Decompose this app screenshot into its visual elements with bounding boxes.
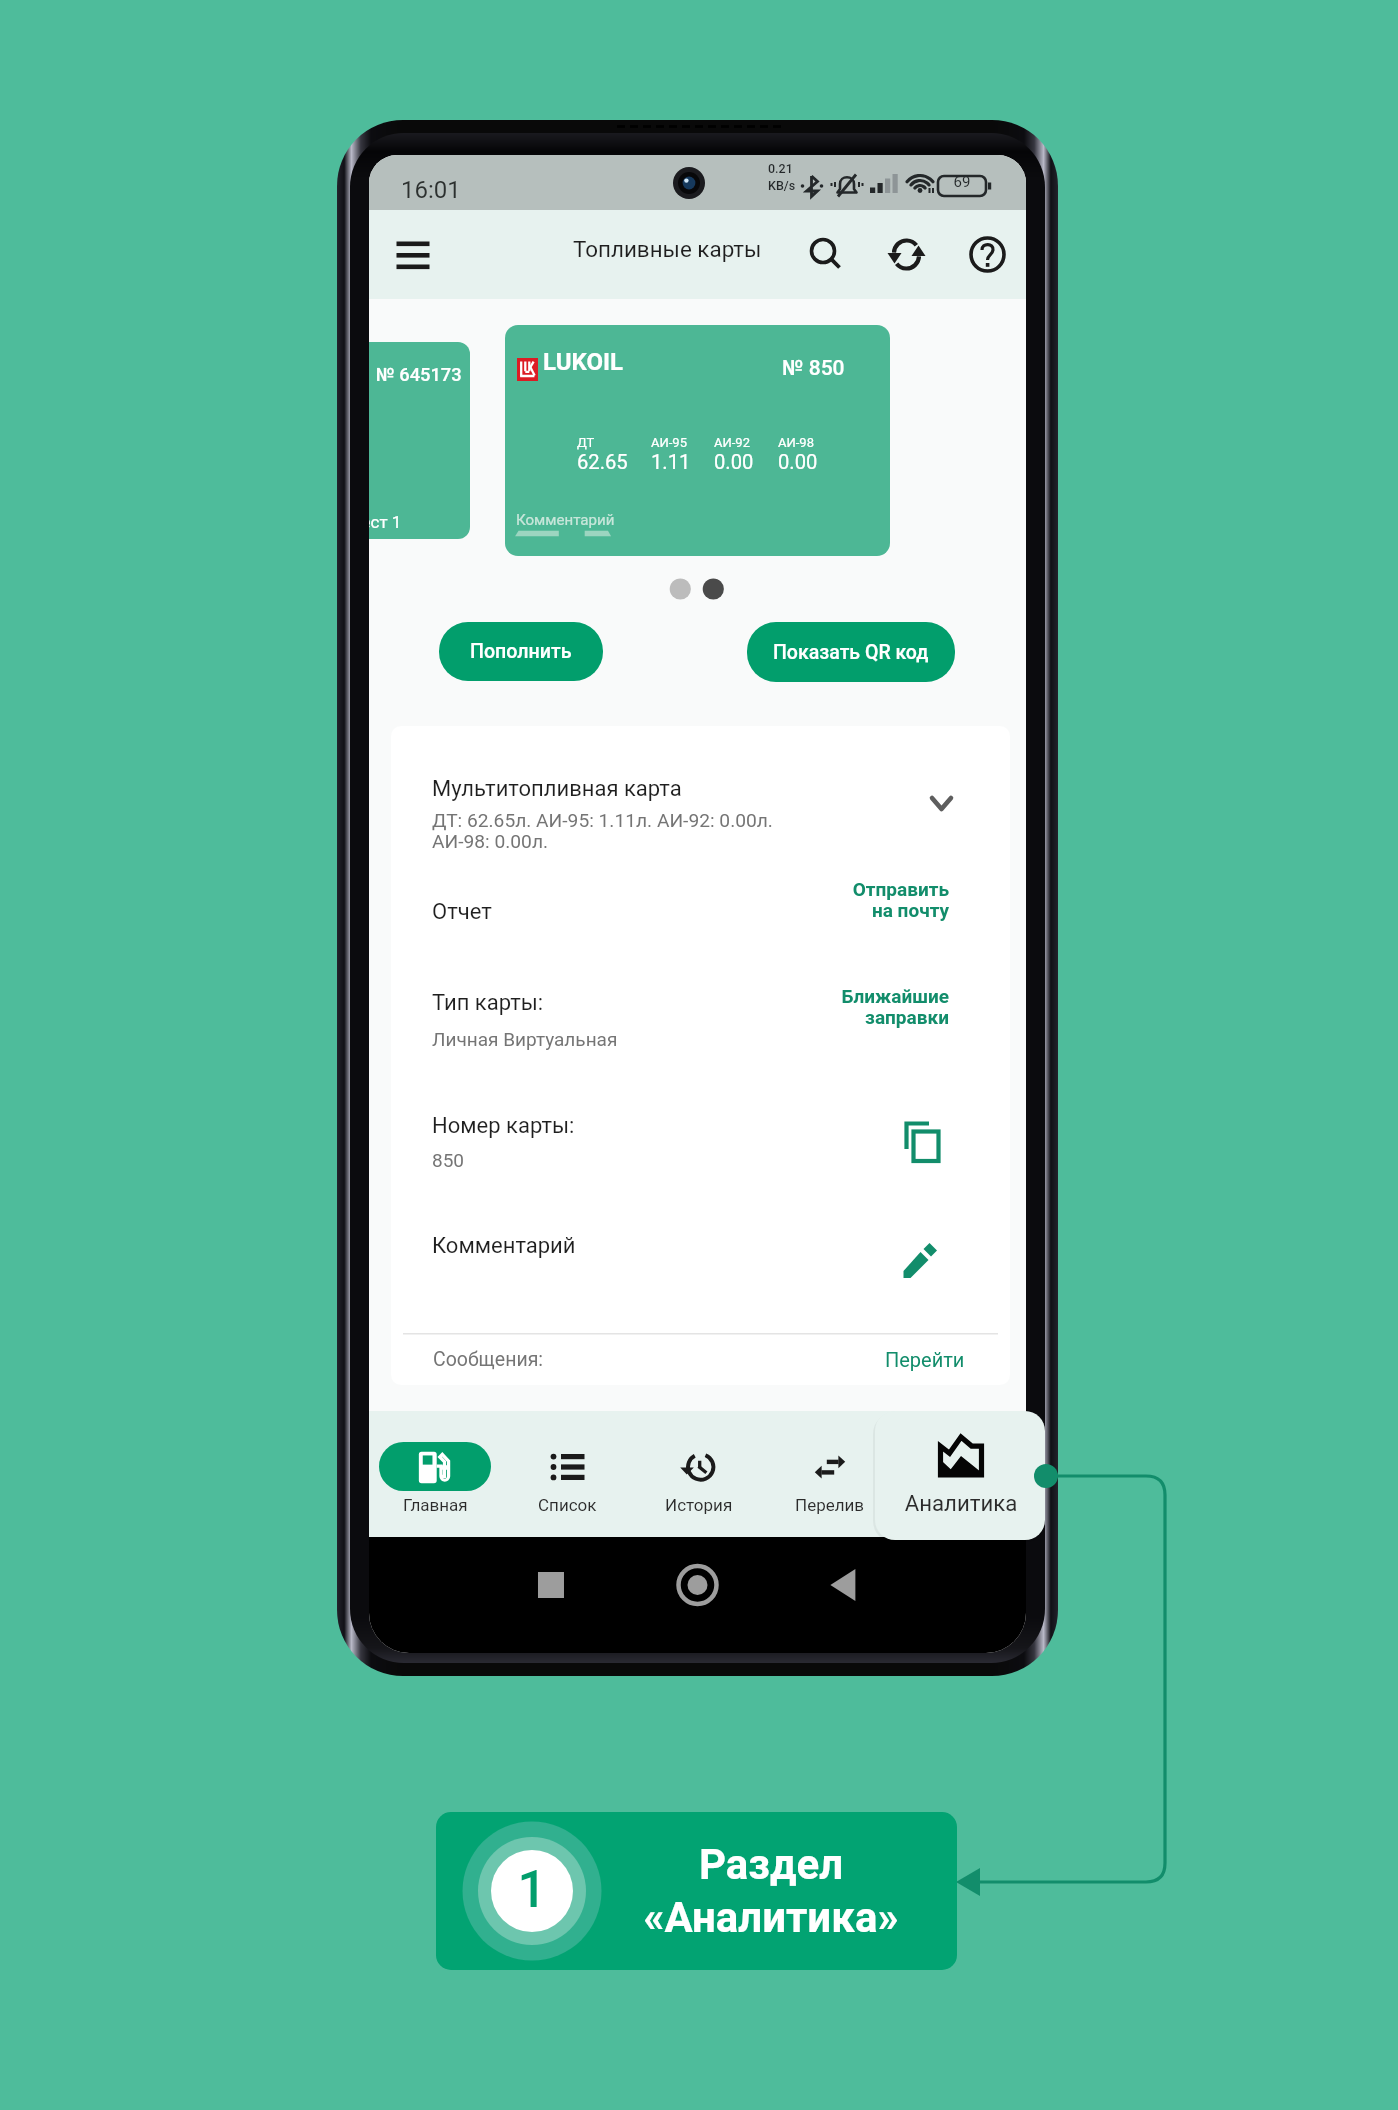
button[interactable]: Аналитика <box>875 1411 1045 1540</box>
button[interactable]: Help <box>961 228 1014 281</box>
staticText: ДТ <box>577 435 595 450</box>
staticText: № 850 <box>782 356 845 381</box>
button[interactable]: LUKOIL <box>505 325 890 556</box>
staticText: 16:01 <box>401 176 461 204</box>
staticText: Отправить на почту <box>721 878 949 922</box>
staticText: Тип карты: <box>432 990 544 1016</box>
staticText: Перелив <box>795 1495 865 1515</box>
button[interactable]: № 645173 <box>369 342 470 539</box>
button[interactable]: Сообщения: <box>403 1333 998 1385</box>
staticText: АИ-92 <box>714 435 750 450</box>
staticText: № 645173 <box>376 364 462 385</box>
button[interactable]: Перелив <box>764 1411 895 1537</box>
staticText: Аналитика <box>901 1490 1021 1516</box>
staticText: Показать QR код <box>773 641 929 664</box>
button[interactable]: Expand details <box>916 778 967 829</box>
staticText: Отчет <box>432 899 492 925</box>
staticText: 0.00 <box>778 450 818 474</box>
staticText: 0.00 <box>714 450 754 474</box>
staticText: LUKOIL <box>543 348 623 376</box>
staticText: Номер карты: <box>432 1113 575 1139</box>
staticText: Ближайшие заправки <box>721 985 949 1029</box>
staticText: 850 <box>432 1149 465 1171</box>
staticText: 0.21 <box>768 161 793 176</box>
staticText: История <box>665 1495 733 1515</box>
staticText: тест 1 <box>369 512 402 532</box>
staticText: 1.11 <box>651 450 691 474</box>
staticText: KB/s <box>768 178 796 193</box>
staticText: АИ-95 <box>651 435 687 450</box>
staticText: Список <box>538 1495 597 1515</box>
button[interactable]: История <box>633 1411 764 1537</box>
staticText: 69 <box>946 173 978 191</box>
staticText: Перейти <box>885 1348 965 1371</box>
button[interactable]: Copy card number <box>898 1118 950 1170</box>
staticText: Раздел «Аналитика» <box>621 1840 921 1942</box>
staticText: Аналитика <box>917 1495 1004 1515</box>
button[interactable]: Refresh <box>880 228 933 281</box>
staticText: Комментарий <box>432 1233 576 1259</box>
button[interactable]: Menu <box>388 230 438 280</box>
staticText: Сообщения: <box>433 1348 885 1371</box>
button[interactable]: Аналитика <box>895 1411 1026 1537</box>
staticText: Комментарий <box>516 511 615 529</box>
staticText: Личная Виртуальная <box>432 1028 618 1050</box>
staticText: Главная <box>403 1495 468 1515</box>
staticText: АИ-98 <box>778 435 814 450</box>
staticText: Топливные карты <box>573 236 762 262</box>
button[interactable]: Главная <box>369 1411 501 1537</box>
button[interactable]: Edit comment <box>893 1236 945 1288</box>
button[interactable]: Показать QR код <box>747 622 955 682</box>
staticText: Мультитопливная карта <box>432 776 682 802</box>
staticText: 1 <box>462 1860 602 1920</box>
button[interactable]: Отправить на почту <box>721 878 949 922</box>
staticText: 62.65 <box>577 450 628 474</box>
button[interactable]: Search <box>799 228 852 281</box>
staticText: ДТ: 62.65л. АИ-95: 1.11л. АИ-92: 0.00л. … <box>432 809 773 853</box>
staticText: Пополнить <box>470 640 572 663</box>
button[interactable]: Ближайшие заправки <box>721 985 949 1029</box>
button[interactable]: Список <box>501 1411 633 1537</box>
button[interactable]: Пополнить <box>439 622 603 681</box>
